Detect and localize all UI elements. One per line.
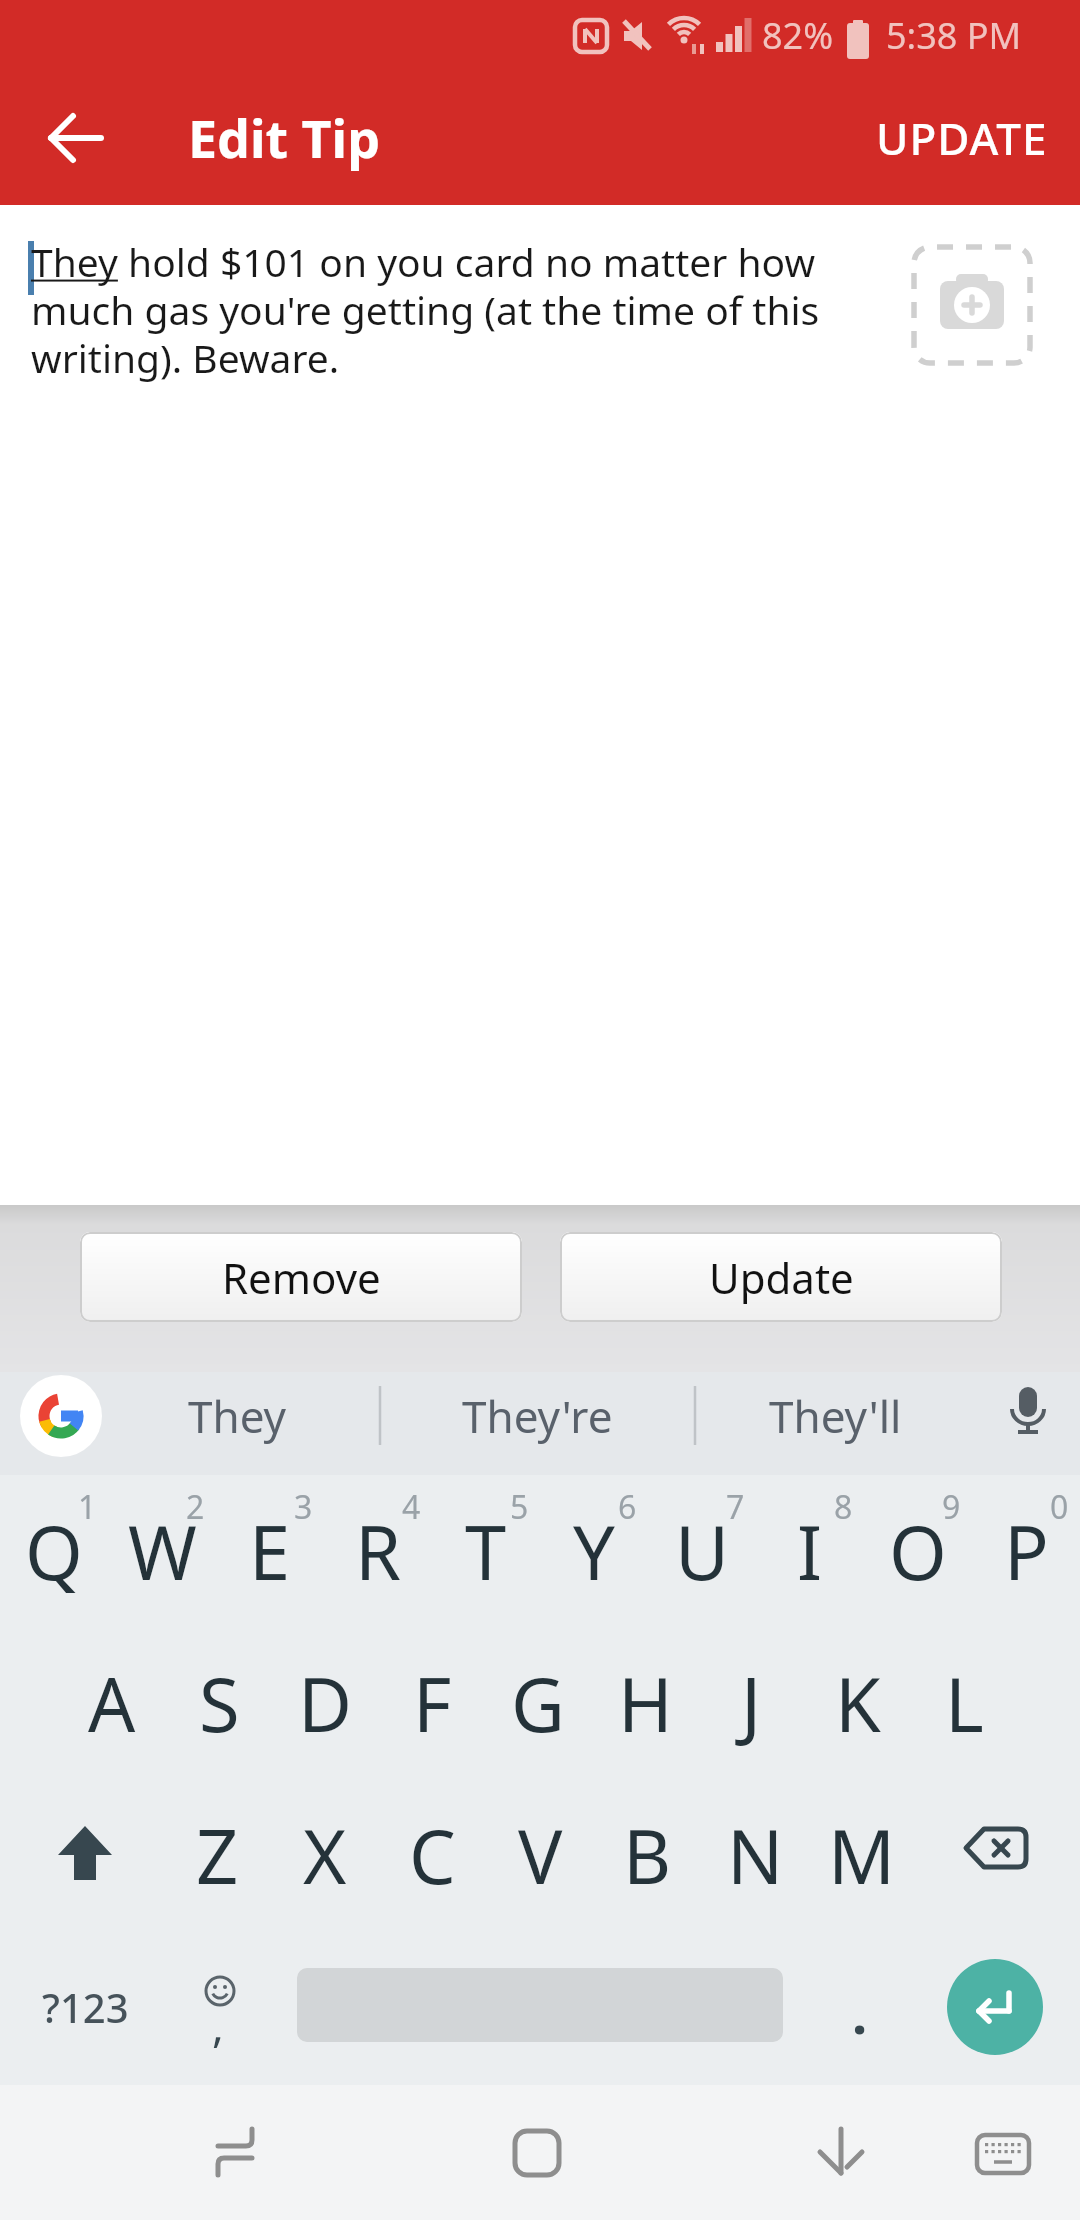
button[interactable]: M [809, 1781, 915, 1929]
button[interactable] [23, 1809, 147, 1901]
staticText: M [828, 1805, 896, 1906]
button[interactable]: They're [390, 1364, 685, 1467]
button[interactable]: UPDATE [868, 100, 1056, 176]
button[interactable]: U [649, 1477, 755, 1625]
button[interactable]: T [433, 1477, 539, 1625]
staticText: Remove [222, 1249, 381, 1306]
button[interactable]: D [272, 1629, 378, 1777]
button[interactable]: They'll [700, 1364, 970, 1467]
button[interactable] [38, 100, 114, 176]
button[interactable]: B [594, 1781, 700, 1929]
staticText: Q [25, 1501, 83, 1602]
staticText: 0 [1050, 1485, 1069, 1529]
staticText: O [889, 1501, 947, 1602]
button[interactable]: . [812, 1961, 908, 2053]
staticText: P [1004, 1501, 1049, 1602]
staticText: L [945, 1653, 984, 1754]
button[interactable]: K [805, 1629, 911, 1777]
staticText: 1 [78, 1485, 97, 1529]
button[interactable]: W [109, 1477, 215, 1625]
staticText: N [727, 1805, 784, 1906]
staticText: X [303, 1805, 347, 1906]
staticText: J [741, 1653, 762, 1754]
staticText: D [298, 1653, 353, 1754]
staticText: H [618, 1653, 673, 1754]
staticText: E [249, 1501, 291, 1602]
button[interactable]: J [698, 1629, 804, 1777]
staticText: . [852, 1976, 868, 2050]
staticText: 5:38 PM [886, 11, 1022, 60]
button[interactable]: I [757, 1477, 863, 1625]
button[interactable]: E [217, 1477, 323, 1625]
staticText: U [675, 1501, 730, 1602]
button[interactable]: N [702, 1781, 808, 1929]
staticText: They [188, 1386, 287, 1446]
button[interactable]: Remove [80, 1232, 522, 1322]
button[interactable]: Z [164, 1781, 270, 1929]
staticText: S [199, 1653, 240, 1754]
staticText: 5 [510, 1485, 529, 1529]
button[interactable]: F [379, 1629, 485, 1777]
staticText: I [797, 1501, 823, 1602]
staticText: B [623, 1805, 672, 1906]
staticText: R [355, 1501, 402, 1602]
button[interactable] [933, 1809, 1057, 1901]
staticText: 3 [294, 1485, 313, 1529]
staticText: Update [709, 1249, 854, 1306]
staticText: ?123 [42, 1980, 129, 2034]
button[interactable]: Y [541, 1477, 647, 1625]
staticText: They're [462, 1386, 613, 1446]
button[interactable]: V [487, 1781, 593, 1929]
button[interactable]: Update [560, 1232, 1002, 1322]
button[interactable]: X [272, 1781, 378, 1929]
staticText: 9 [942, 1485, 961, 1529]
button[interactable]: ?123 [23, 1961, 147, 2053]
button[interactable] [912, 245, 1032, 365]
button[interactable]: , [170, 1961, 266, 2053]
staticText: Y [573, 1501, 615, 1602]
staticText: G [511, 1653, 565, 1754]
staticText: 8 [834, 1485, 853, 1529]
button[interactable]: G [485, 1629, 591, 1777]
staticText: 82% [762, 11, 834, 60]
staticText: They'll [769, 1386, 902, 1446]
staticText: T [465, 1501, 507, 1602]
staticText: V [518, 1805, 563, 1906]
staticText: Edit Tip [188, 102, 381, 173]
button[interactable] [791, 2110, 891, 2195]
button[interactable] [20, 1375, 102, 1457]
staticText: C [409, 1805, 456, 1906]
staticText: They hold $101 on you card no matter how… [31, 235, 881, 384]
button[interactable]: C [379, 1781, 485, 1929]
button[interactable]: A [59, 1629, 165, 1777]
button[interactable]: R [325, 1477, 431, 1625]
staticText: 4 [402, 1485, 421, 1529]
button[interactable] [187, 2110, 287, 2195]
staticText: Z [196, 1805, 239, 1906]
staticText: K [835, 1653, 881, 1754]
button[interactable]: H [592, 1629, 698, 1777]
staticText: W [128, 1501, 197, 1602]
button[interactable] [947, 1959, 1043, 2055]
button[interactable]: P [973, 1477, 1079, 1625]
button[interactable]: O [865, 1477, 971, 1625]
staticText: 6 [618, 1485, 637, 1529]
button[interactable]: Q [1, 1477, 107, 1625]
staticText: 7 [726, 1485, 745, 1529]
staticText: A [88, 1653, 136, 1754]
staticText: F [413, 1653, 452, 1754]
staticText: UPDATE [876, 108, 1048, 168]
staticText: , [212, 1995, 224, 2055]
button[interactable]: S [166, 1629, 272, 1777]
button[interactable]: They [112, 1364, 362, 1467]
button[interactable] [953, 2110, 1053, 2195]
button[interactable] [487, 2110, 587, 2195]
button[interactable]: L [911, 1629, 1017, 1777]
staticText: 2 [186, 1485, 205, 1529]
